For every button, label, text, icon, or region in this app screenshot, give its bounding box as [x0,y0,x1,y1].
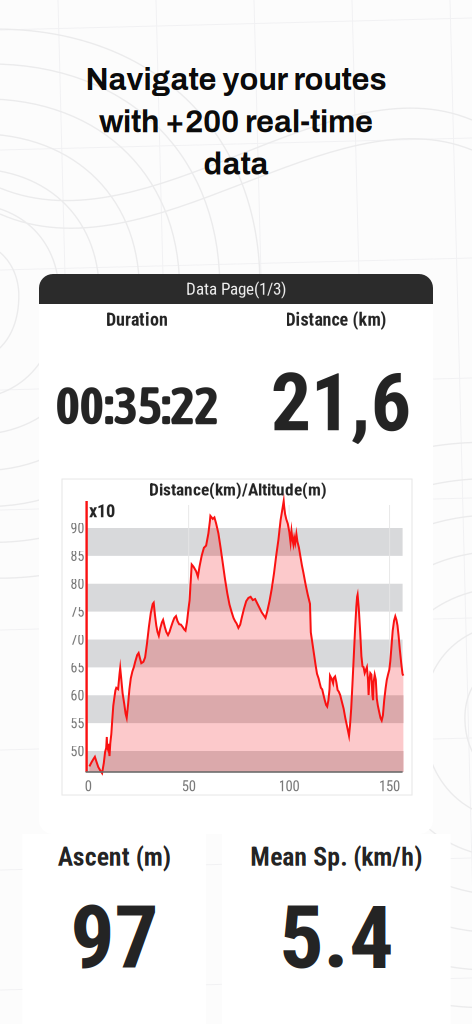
staticText: 21,6 [271,356,411,450]
staticText: x10 [89,500,115,522]
staticText: 150 [379,778,400,795]
staticText: Distance(km)/Altitude(m) [149,479,327,500]
staticText: 55 [71,715,85,732]
staticText: 70 [71,632,85,648]
staticText: 5.4 [279,886,393,989]
staticText: 90 [71,520,85,537]
staticText: Distance (km) [285,309,386,330]
staticText: with +200 real-time [99,105,373,139]
staticText: Ascent (m) [58,842,171,872]
button[interactable]: Mean Sp. (km/h) [222,834,451,1024]
staticText: 80 [71,576,85,592]
staticText: Mean Sp. (km/h) [250,842,422,872]
staticText: Data Page(1/3) [186,279,286,299]
staticText: 50 [182,778,196,795]
staticText: 65 [71,660,85,676]
staticText: 50 [71,743,85,760]
staticText: 97 [70,886,158,989]
staticText: 100 [279,778,300,795]
staticText: Navigate your routes [85,63,386,96]
staticText: 60 [71,688,85,704]
staticText: data [203,148,268,181]
staticText: Duration [106,309,168,330]
staticText: 75 [71,604,85,620]
button[interactable]: Ascent (m) [22,834,206,1024]
staticText: 0 [85,778,92,795]
staticText: 00:35:22 [55,376,218,435]
staticText: 85 [71,548,85,564]
